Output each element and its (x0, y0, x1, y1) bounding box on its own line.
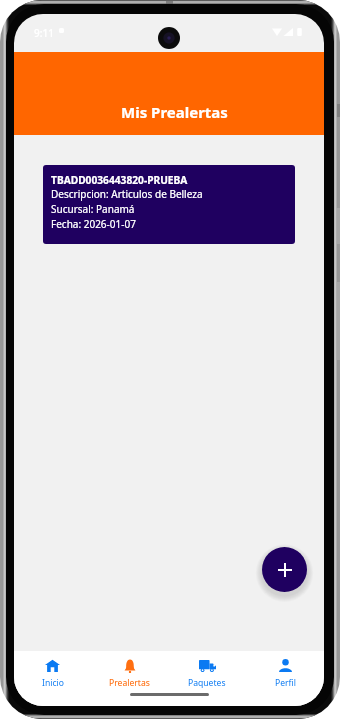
staticText: Fecha: 2026-01-07 (51, 217, 136, 231)
button[interactable]: Prealertas (91, 651, 168, 689)
staticText: Mis Prealertas (121, 102, 228, 122)
button[interactable]: TBADD0036443820-PRUEBA (43, 165, 295, 244)
staticText: Perfil (275, 677, 296, 689)
staticText: TBADD0036443820-PRUEBA (51, 173, 188, 187)
staticText: 9:11 (34, 26, 54, 40)
staticText: Descripcion: Articulos de Belleza (51, 187, 203, 201)
button[interactable]: Perfil (246, 651, 324, 689)
button[interactable]: Agregar prealerta (262, 547, 307, 592)
staticText: Inicio (42, 677, 64, 689)
button[interactable]: Paquetes (168, 651, 246, 689)
staticText: Prealertas (109, 677, 150, 689)
button[interactable]: Inicio (14, 651, 91, 689)
staticText: Paquetes (188, 677, 226, 689)
staticText: Sucursal: Panamá (51, 202, 135, 216)
